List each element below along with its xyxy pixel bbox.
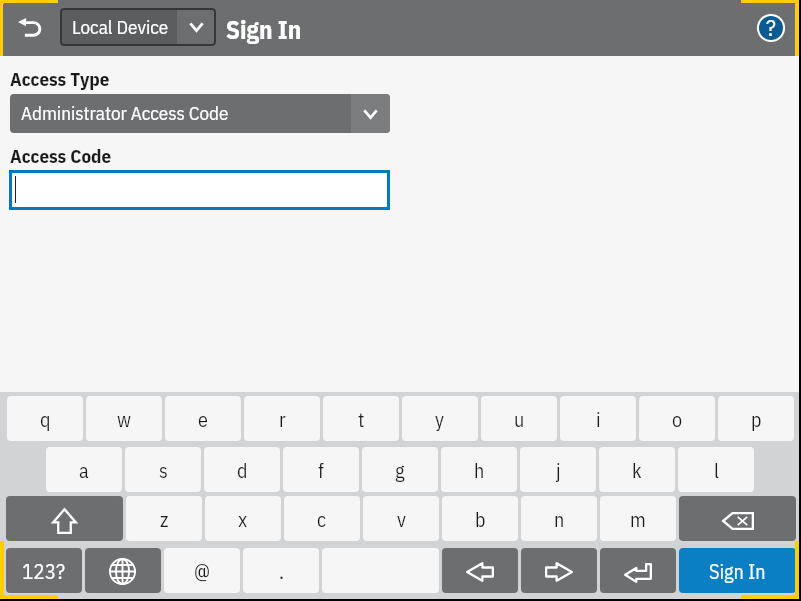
button[interactable]: n: [521, 496, 597, 541]
staticText: l: [714, 457, 719, 483]
button[interactable]: @: [164, 548, 240, 593]
staticText: c: [317, 506, 327, 532]
button[interactable]: o: [639, 396, 715, 441]
staticText: @: [194, 558, 211, 584]
button[interactable]: s: [125, 447, 201, 492]
staticText: Local Device: [72, 15, 169, 40]
button[interactable]: z: [126, 496, 202, 541]
button[interactable]: 123?: [6, 548, 82, 593]
button[interactable]: x: [205, 496, 281, 541]
button[interactable]: Shift: [6, 496, 123, 541]
button[interactable]: k: [599, 447, 675, 492]
button[interactable]: l: [678, 447, 754, 492]
staticText: h: [474, 457, 485, 483]
button[interactable]: w: [86, 396, 162, 441]
staticText: f: [318, 457, 324, 483]
button[interactable]: Back: [4, 2, 56, 54]
button[interactable]: y: [402, 396, 478, 441]
staticText: s: [159, 457, 168, 483]
button[interactable]: b: [442, 496, 518, 541]
button[interactable]: u: [481, 396, 557, 441]
button[interactable]: .: [243, 548, 319, 593]
button[interactable]: e: [165, 396, 241, 441]
button[interactable]: Cursor left: [442, 548, 518, 593]
button[interactable]: Cursor right: [521, 548, 597, 593]
button[interactable]: j: [520, 447, 596, 492]
staticText: Administrator Access Code: [21, 101, 229, 126]
staticText: k: [632, 457, 642, 483]
staticText: .: [279, 558, 284, 584]
button[interactable]: g: [362, 447, 438, 492]
staticText: r: [279, 406, 286, 432]
staticText: j: [556, 457, 561, 483]
staticText: q: [40, 406, 51, 432]
staticText: p: [751, 406, 762, 432]
button[interactable]: Backspace: [679, 496, 796, 541]
button[interactable]: h: [441, 447, 517, 492]
staticText: a: [79, 457, 89, 483]
staticText: z: [160, 506, 169, 532]
button[interactable]: Sign In: [679, 548, 796, 593]
button[interactable]: m: [600, 496, 676, 541]
staticText: e: [198, 406, 208, 432]
button[interactable]: i: [560, 396, 636, 441]
button[interactable]: [9, 170, 390, 210]
staticText: Access Type: [10, 67, 110, 92]
button[interactable]: f: [283, 447, 359, 492]
staticText: Sign In: [226, 13, 302, 46]
staticText: Access Code: [10, 144, 112, 169]
staticText: y: [435, 406, 445, 432]
staticText: d: [237, 457, 248, 483]
button[interactable]: p: [718, 396, 794, 441]
staticText: b: [475, 506, 486, 532]
button[interactable]: a: [46, 447, 122, 492]
staticText: m: [630, 506, 646, 532]
staticText: i: [596, 406, 601, 432]
staticText: Sign In: [709, 558, 766, 584]
staticText: o: [672, 406, 683, 432]
staticText: n: [554, 506, 565, 532]
button[interactable]: Enter: [600, 548, 676, 593]
staticText: ?: [766, 12, 776, 42]
button[interactable]: v: [363, 496, 439, 541]
staticText: u: [514, 406, 525, 432]
button[interactable]: Help: [744, 1, 797, 54]
staticText: v: [397, 506, 406, 532]
button[interactable]: Administrator Access Code: [10, 94, 390, 133]
button[interactable]: Local Device: [60, 8, 216, 46]
button[interactable]: Change language: [85, 548, 161, 593]
staticText: t: [358, 406, 365, 432]
staticText: g: [395, 457, 405, 483]
staticText: 123?: [22, 557, 66, 584]
staticText: w: [117, 406, 131, 432]
button[interactable]: r: [244, 396, 320, 441]
button[interactable]: c: [284, 496, 360, 541]
staticText: x: [238, 506, 248, 532]
button[interactable]: q: [7, 396, 83, 441]
button[interactable]: t: [323, 396, 399, 441]
button[interactable]: d: [204, 447, 280, 492]
